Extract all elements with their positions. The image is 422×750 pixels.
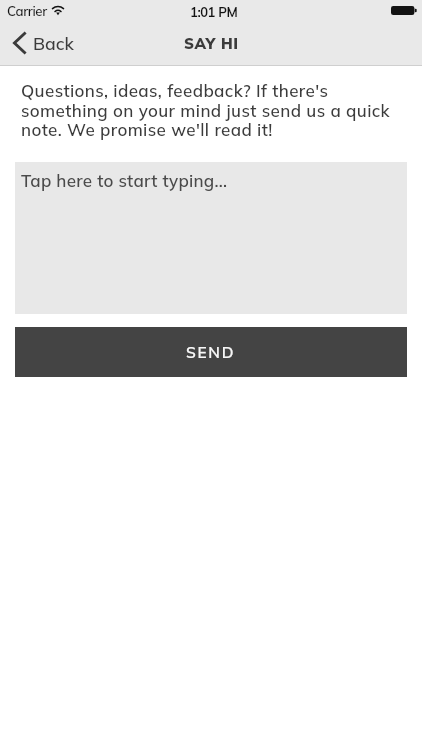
staticText: Questions, ideas, feedback? If there's s… [21, 80, 397, 140]
other: Back [13, 32, 26, 54]
other: Wi-Fi [51, 6, 65, 15]
staticText: Back [33, 32, 74, 54]
button[interactable]: Back [0, 23, 84, 63]
staticText: SEND [186, 342, 236, 361]
staticText: Carrier [7, 3, 47, 20]
staticText: 1:01 PM [190, 4, 238, 20]
staticText: SAY HI [184, 34, 239, 53]
other: Battery [391, 6, 417, 15]
button[interactable]: SEND [15, 327, 407, 377]
staticText: Tap here to start typing... [21, 170, 228, 191]
button[interactable]: Tap here to start typing... [15, 162, 407, 314]
